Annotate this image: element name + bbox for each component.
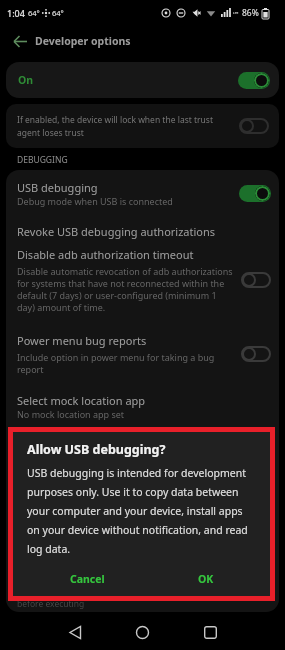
button[interactable]	[239, 118, 269, 134]
staticText: Revoke USB debugging authorizations	[17, 224, 216, 239]
staticText: Power menu bug reports	[17, 333, 147, 348]
button[interactable]	[241, 346, 271, 362]
button[interactable]	[68, 625, 83, 640]
button[interactable]: Power menu bug reports	[17, 333, 271, 375]
staticText: 86%	[242, 7, 259, 19]
staticText: DEBUGGING	[17, 154, 68, 166]
staticText: 64°	[52, 8, 64, 18]
staticText: Allow USB debugging?	[27, 441, 166, 458]
staticText: Disable automatic revocation of adb auth…	[17, 265, 233, 313]
staticText: If enabled, the device will lock when th…	[17, 114, 213, 139]
button[interactable]: Select mock location app	[17, 393, 271, 420]
staticText: Debug mode when USB is connected	[17, 195, 173, 207]
button[interactable]: If enabled, the device will lock when th…	[6, 104, 279, 148]
staticText: before executing	[17, 598, 85, 610]
button[interactable]	[238, 72, 270, 89]
button[interactable]	[241, 272, 271, 288]
staticText: ᴸᵀᴱ	[233, 10, 239, 17]
staticText: 64°	[28, 8, 40, 18]
staticText: USB debugging is intended for developmen…	[27, 466, 248, 556]
button[interactable]: OK	[141, 572, 270, 586]
button[interactable]	[239, 185, 271, 202]
button[interactable]: On	[6, 62, 279, 98]
staticText: No mock location app set	[17, 408, 125, 420]
button[interactable]: USB debugging	[17, 180, 271, 207]
button[interactable]	[13, 34, 28, 49]
staticText: Disable adb authorization timeout	[17, 247, 194, 262]
button[interactable]: Cancel	[33, 572, 141, 586]
staticText: Include option in power menu for taking …	[17, 351, 215, 375]
button[interactable]	[204, 626, 217, 639]
button[interactable]	[135, 625, 150, 640]
staticText: Developer options	[35, 34, 131, 48]
button[interactable]: Disable adb authorization timeout	[17, 247, 271, 313]
staticText: 1:04	[7, 7, 25, 19]
staticText: OK	[198, 572, 214, 586]
staticText: On	[18, 73, 34, 87]
button[interactable]: Revoke USB debugging authorizations	[17, 224, 271, 239]
staticText: Cancel	[70, 572, 105, 586]
staticText: USB debugging	[17, 180, 98, 195]
staticText: Select mock location app	[17, 393, 146, 408]
